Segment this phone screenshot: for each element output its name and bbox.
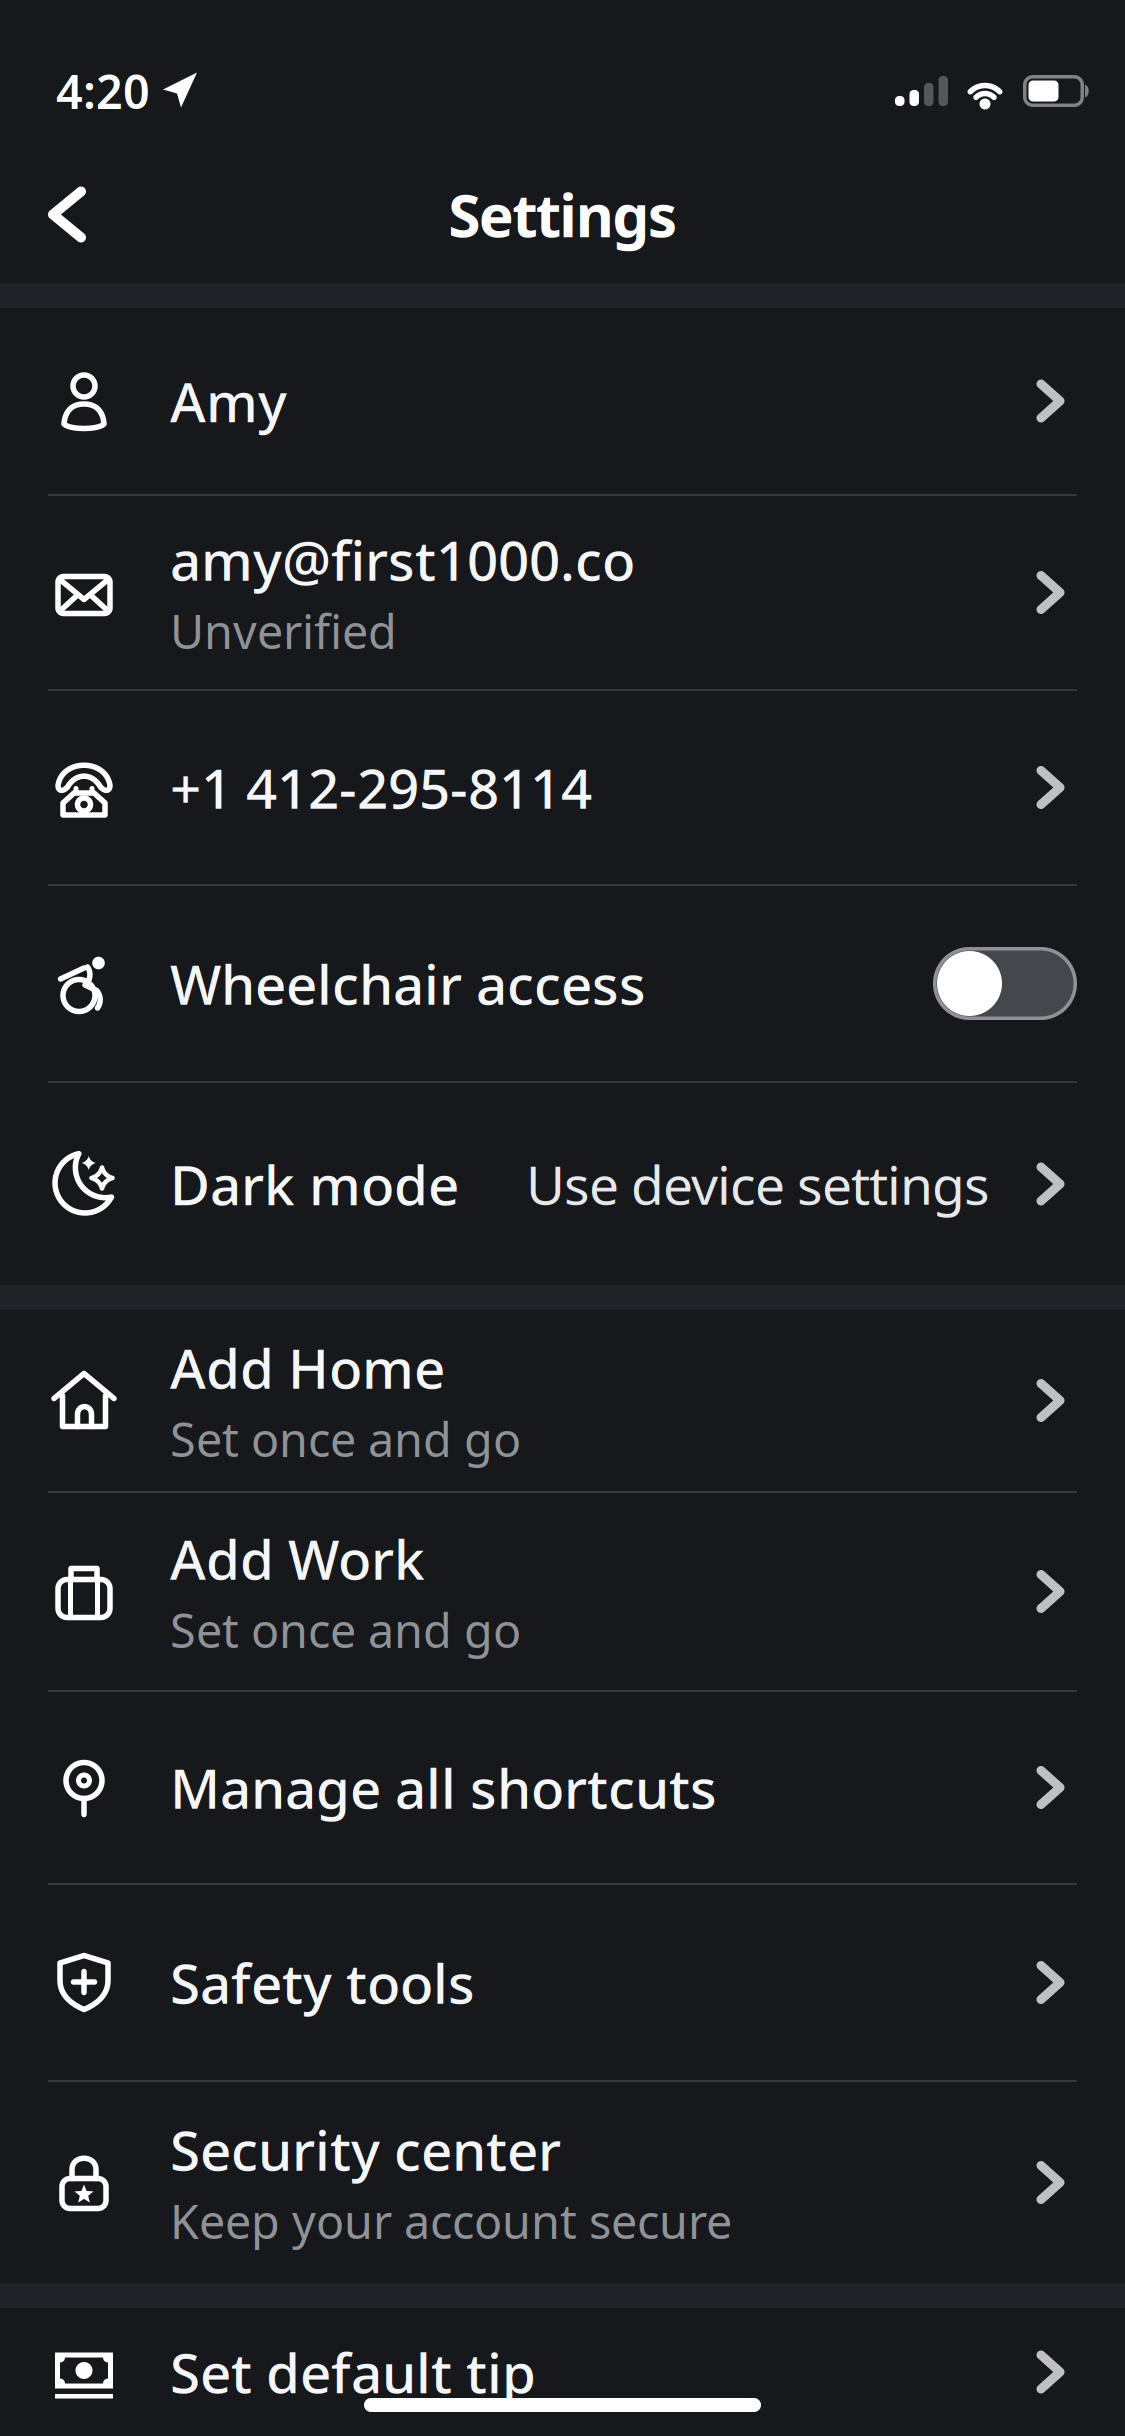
button[interactable]: Manage all shortcuts [0,1692,1125,1883]
staticText: Safety tools [170,1946,475,2019]
staticText: Dark mode [170,1148,459,1220]
staticText: amy@first1000.co [170,523,635,596]
staticText: Set once and go [170,1599,521,1661]
button[interactable]: Add Home [0,1310,1125,1491]
button[interactable]: Add Work [0,1493,1125,1690]
staticText: Settings [448,175,677,253]
staticText: Set default tip [170,2336,536,2408]
staticText: Add Home [170,1331,445,1404]
staticText: Set once and go [170,1408,521,1470]
button[interactable]: amy@first1000.co [0,496,1125,689]
staticText: Unverified [170,600,397,662]
staticText: Wheelchair access [170,947,646,1020]
button[interactable]: Amy [0,308,1125,494]
button[interactable]: Back [0,175,89,239]
button[interactable]: Security center [0,2082,1125,2283]
button[interactable]: Wheelchair access [0,886,1125,1081]
staticText: Manage all shortcuts [170,1751,717,1824]
staticText: Add Work [170,1522,425,1595]
staticText: Keep your account secure [170,2190,732,2252]
staticText: Amy [170,365,287,437]
staticText: 4:20 [56,60,150,122]
button[interactable]: Set default tip [0,2308,1125,2436]
staticText: Use device settings [526,1149,990,1219]
staticText: +1 412-295-8114 [170,751,592,824]
button[interactable]: Dark mode [0,1083,1125,1285]
button[interactable]: Safety tools [0,1885,1125,2080]
staticText: Security center [170,2113,561,2186]
button[interactable]: +1 412-295-8114 [0,691,1125,884]
